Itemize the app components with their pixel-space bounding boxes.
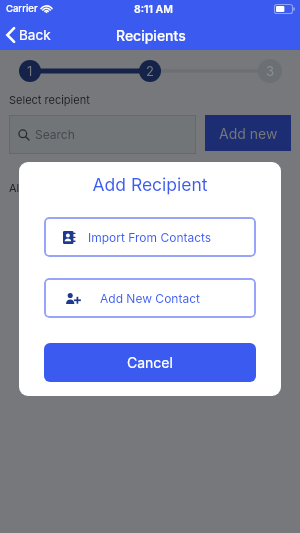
staticText: 1 — [27, 63, 33, 79]
staticText: Select recipient — [9, 93, 90, 106]
button[interactable]: Back — [0, 25, 61, 45]
staticText: Back — [19, 27, 51, 43]
staticText: Add New Contact — [100, 291, 200, 306]
staticText: Recipients — [116, 27, 186, 44]
staticText: Import From Contacts — [88, 230, 212, 245]
staticText: Carrier — [6, 3, 38, 14]
staticText: Search — [35, 127, 75, 142]
staticText: Add Recipient — [44, 174, 256, 195]
button[interactable]: Add contact — [44, 278, 256, 318]
other: Add contact — [66, 293, 81, 304]
staticText: All contacts — [9, 181, 70, 194]
button[interactable]: Cancel — [44, 343, 256, 382]
staticText: Add new — [219, 125, 278, 142]
staticText: Cancel — [127, 354, 173, 371]
staticText: 8:11 AM — [134, 3, 173, 16]
other: Contacts — [63, 231, 75, 244]
staticText: 3 — [266, 63, 275, 79]
button[interactable]: Contacts — [44, 217, 256, 257]
button[interactable]: Search — [9, 115, 196, 154]
staticText: 2 — [146, 63, 154, 79]
button[interactable]: Add new — [205, 115, 291, 151]
